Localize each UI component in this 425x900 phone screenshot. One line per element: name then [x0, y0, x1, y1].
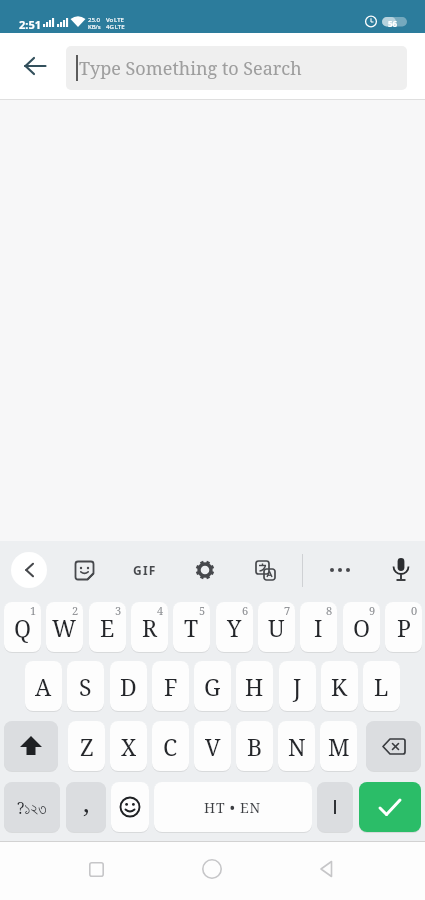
- staticText: V: [205, 731, 221, 762]
- button[interactable]: [359, 782, 421, 832]
- staticText: U: [268, 612, 285, 643]
- button[interactable]: Type Something to Search: [66, 46, 407, 90]
- staticText: 3: [115, 603, 122, 618]
- button[interactable]: D: [110, 661, 147, 711]
- staticText: L: [374, 671, 389, 702]
- button[interactable]: U: [258, 602, 295, 652]
- button[interactable]: B: [236, 721, 273, 771]
- staticText: S: [79, 671, 92, 702]
- staticText: GIF: [133, 562, 157, 578]
- staticText: R: [142, 612, 158, 643]
- button[interactable]: [307, 849, 347, 889]
- staticText: F: [164, 671, 178, 702]
- staticText: W: [52, 612, 77, 643]
- button[interactable]: C: [152, 721, 189, 771]
- button[interactable]: I: [300, 602, 337, 652]
- staticText: 0: [411, 603, 418, 618]
- button[interactable]: [192, 849, 232, 889]
- staticText: ,: [83, 784, 90, 819]
- button[interactable]: M: [320, 721, 357, 771]
- button[interactable]: ?১২৩: [4, 782, 60, 832]
- button[interactable]: O: [343, 602, 380, 652]
- button[interactable]: Z: [68, 721, 105, 771]
- staticText: 2: [72, 603, 79, 618]
- button[interactable]: T: [173, 602, 210, 652]
- button[interactable]: Q: [4, 602, 41, 652]
- button[interactable]: ,: [66, 782, 106, 832]
- button[interactable]: [317, 782, 353, 832]
- staticText: HT • EN: [204, 798, 262, 817]
- button[interactable]: F: [152, 661, 189, 711]
- staticText: N: [288, 731, 306, 762]
- staticText: B: [247, 731, 263, 762]
- staticText: 8: [326, 603, 333, 618]
- staticText: P: [397, 612, 411, 643]
- button[interactable]: L: [363, 661, 400, 711]
- button[interactable]: E: [89, 602, 126, 652]
- staticText: Z: [80, 731, 94, 762]
- staticText: 7: [284, 603, 291, 618]
- staticText: 1: [30, 603, 37, 618]
- button[interactable]: GIF: [123, 550, 167, 590]
- staticText: O: [353, 612, 371, 643]
- button[interactable]: G: [194, 661, 231, 711]
- button[interactable]: [15, 46, 55, 86]
- button[interactable]: W: [46, 602, 83, 652]
- button[interactable]: [245, 550, 285, 590]
- button[interactable]: HT • EN: [154, 782, 312, 832]
- button[interactable]: V: [194, 721, 231, 771]
- button[interactable]: S: [67, 661, 104, 711]
- button[interactable]: [11, 552, 47, 588]
- staticText: 56: [388, 18, 398, 29]
- staticText: X: [121, 731, 137, 762]
- staticText: I: [314, 612, 323, 643]
- staticText: Type Something to Search: [79, 56, 302, 81]
- staticText: Y: [227, 612, 242, 643]
- button[interactable]: A: [25, 661, 62, 711]
- staticText: 9: [369, 603, 376, 618]
- staticText: 25.0 KB/s: [88, 16, 101, 31]
- button[interactable]: [381, 550, 421, 590]
- button[interactable]: R: [131, 602, 168, 652]
- button[interactable]: [320, 550, 360, 590]
- staticText: E: [100, 612, 115, 643]
- staticText: C: [163, 731, 178, 762]
- staticText: J: [293, 671, 302, 702]
- button[interactable]: H: [236, 661, 273, 711]
- button[interactable]: [366, 721, 421, 771]
- staticText: Vo LTE 4G LTE: [106, 16, 125, 31]
- staticText: Q: [14, 612, 32, 643]
- staticText: 4: [157, 603, 164, 618]
- button[interactable]: X: [110, 721, 147, 771]
- staticText: H: [245, 671, 264, 702]
- staticText: A: [35, 671, 52, 702]
- staticText: G: [204, 671, 221, 702]
- button[interactable]: [76, 849, 116, 889]
- button[interactable]: [64, 550, 104, 590]
- staticText: M: [328, 731, 350, 762]
- button[interactable]: P: [385, 602, 422, 652]
- button[interactable]: J: [279, 661, 316, 711]
- staticText: 6: [242, 603, 249, 618]
- button[interactable]: K: [321, 661, 358, 711]
- staticText: T: [184, 612, 199, 643]
- staticText: D: [120, 671, 137, 702]
- button[interactable]: [111, 782, 149, 832]
- button[interactable]: N: [278, 721, 315, 771]
- button[interactable]: [185, 550, 225, 590]
- button[interactable]: Y: [216, 602, 253, 652]
- staticText: K: [331, 671, 348, 702]
- staticText: 2:51: [19, 17, 41, 32]
- staticText: ?১২৩: [17, 797, 47, 818]
- button[interactable]: [4, 721, 58, 771]
- staticText: 5: [199, 603, 206, 618]
